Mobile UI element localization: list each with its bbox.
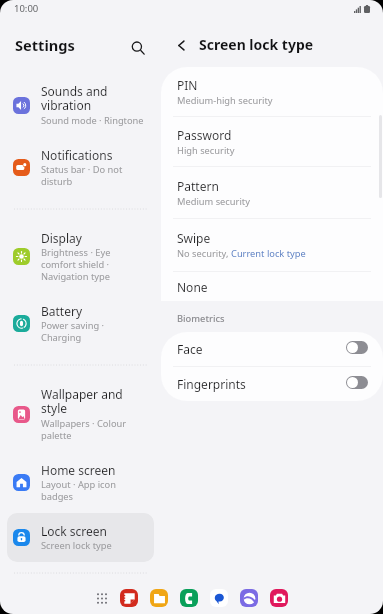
staticText: Wallpapers · Colour palette <box>41 417 144 442</box>
button[interactable]: Back <box>161 23 383 67</box>
staticText: None <box>177 279 208 295</box>
button[interactable]: Face <box>161 332 383 367</box>
staticText: Medium security <box>177 195 250 208</box>
button[interactable]: Home screen <box>7 452 154 513</box>
staticText: Brightness · Eye comfort shield · Naviga… <box>41 246 144 283</box>
staticText: Lock screen <box>41 523 108 539</box>
button[interactable]: internet <box>240 589 258 607</box>
button[interactable]: note <box>120 589 138 607</box>
staticText: Home screen <box>41 462 116 478</box>
staticText: Power saving · Charging <box>41 319 144 344</box>
staticText: Current lock type <box>231 247 306 260</box>
button[interactable]: Password <box>161 117 383 167</box>
staticText: Face <box>177 341 203 357</box>
button[interactable]: Notifications <box>7 137 154 198</box>
staticText: Notifications <box>41 147 113 163</box>
button[interactable]: Wallpaper and style <box>7 376 154 452</box>
staticText: Screen lock type <box>199 35 314 54</box>
staticText: Sounds and vibration <box>41 83 144 114</box>
staticText: Fingerprints <box>177 376 246 392</box>
staticText: Medium-high security <box>177 94 273 107</box>
button[interactable]: files <box>150 589 168 607</box>
staticText: No security, <box>177 247 231 260</box>
button[interactable]: Pattern <box>161 167 383 219</box>
staticText: Password <box>177 127 232 143</box>
button[interactable]: Display <box>7 220 154 293</box>
staticText: Sound mode · Ringtone <box>41 114 144 127</box>
button[interactable]: camera <box>270 589 288 607</box>
staticText: Display <box>41 230 82 246</box>
button[interactable]: msg <box>210 589 228 607</box>
other: Back <box>173 37 189 53</box>
button[interactable]: None <box>161 272 383 301</box>
staticText: Wallpaper and style <box>41 386 144 417</box>
button[interactable]: Search <box>123 33 153 63</box>
staticText: Swipe <box>177 230 211 246</box>
staticText: 10:00 <box>14 2 39 15</box>
button[interactable]: Sounds and vibration <box>7 73 154 137</box>
button[interactable]: Battery <box>7 293 154 354</box>
button[interactable]: All apps <box>97 590 107 607</box>
button[interactable]: phone <box>180 589 198 607</box>
staticText: Battery <box>41 303 83 319</box>
button[interactable]: Swipe <box>161 219 383 272</box>
staticText: Status bar · Do not disturb <box>41 163 144 188</box>
button[interactable]: Lock screen <box>7 513 154 562</box>
staticText: Pattern <box>177 178 219 194</box>
staticText: Biometrics <box>177 312 225 325</box>
staticText: High security <box>177 144 235 157</box>
staticText: Layout · App icon badges <box>41 478 144 503</box>
staticText: Screen lock type <box>41 539 112 552</box>
button[interactable]: PIN <box>161 67 383 117</box>
staticText: Settings <box>15 35 75 55</box>
staticText: PIN <box>177 77 198 93</box>
button[interactable]: Fingerprints <box>161 367 383 401</box>
